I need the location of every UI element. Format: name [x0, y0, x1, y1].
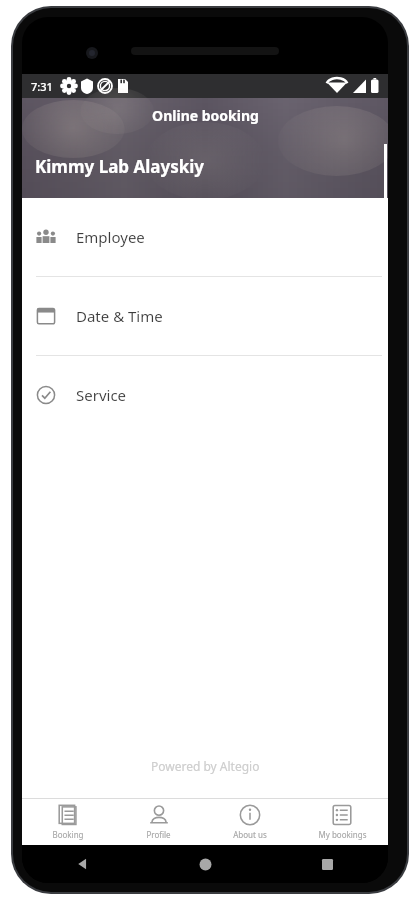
- button[interactable]: Employee: [22, 198, 388, 276]
- button[interactable]: Date & Time: [22, 277, 388, 355]
- button[interactable]: Recent apps: [266, 845, 388, 883]
- button[interactable]: Booking: [22, 799, 113, 845]
- staticText: About us: [233, 829, 267, 840]
- button[interactable]: My bookings: [296, 799, 388, 845]
- staticText: Kimmy Lab Alayskiy: [35, 155, 205, 178]
- staticText: Employee: [76, 227, 145, 247]
- staticText: Date & Time: [76, 306, 163, 326]
- button[interactable]: Home: [144, 845, 266, 883]
- button[interactable]: About us: [204, 799, 296, 845]
- button[interactable]: Profile: [113, 799, 204, 845]
- staticText: Online booking: [152, 106, 259, 125]
- staticText: Profile: [146, 829, 171, 840]
- staticText: Service: [76, 385, 127, 405]
- button[interactable]: Service: [22, 356, 388, 434]
- staticText: My bookings: [318, 829, 367, 840]
- staticText: Powered by Altegio: [151, 758, 260, 774]
- staticText: Booking: [52, 829, 84, 840]
- button[interactable]: Back: [22, 845, 144, 883]
- staticText: 7:31: [31, 79, 53, 94]
